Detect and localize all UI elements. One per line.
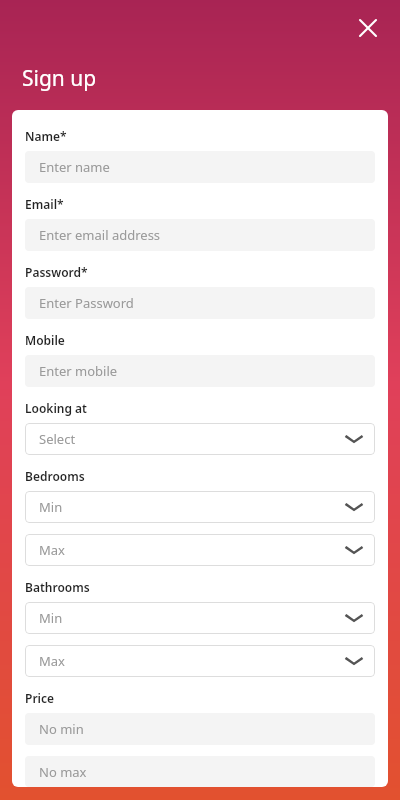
staticText: Enter mobile — [39, 362, 118, 380]
staticText: Min — [39, 498, 345, 516]
staticText: No max — [39, 763, 87, 781]
staticText: Name* — [25, 128, 67, 144]
staticText: Bathrooms — [25, 579, 90, 595]
staticText: Password* — [25, 264, 88, 280]
button[interactable]: Enter name — [25, 151, 375, 183]
button[interactable]: Enter Password — [25, 287, 375, 319]
staticText: Enter name — [39, 158, 110, 176]
staticText: Max — [39, 541, 345, 559]
button[interactable]: No min — [25, 713, 375, 745]
button[interactable]: Max — [25, 645, 375, 677]
staticText: Price — [25, 690, 55, 706]
staticText: Select — [39, 430, 345, 448]
staticText: Email* — [25, 196, 64, 212]
staticText: Enter Password — [39, 294, 134, 312]
staticText: Mobile — [25, 332, 65, 348]
button[interactable]: Min — [25, 491, 375, 523]
button[interactable]: Min — [25, 602, 375, 634]
staticText: Max — [39, 652, 345, 670]
button[interactable]: Max — [25, 534, 375, 566]
button[interactable]: Close — [352, 12, 384, 44]
staticText: Min — [39, 609, 345, 627]
staticText: No min — [39, 720, 84, 738]
staticText: Looking at — [25, 400, 87, 416]
button[interactable]: No max — [25, 756, 375, 787]
staticText: Sign up — [22, 64, 97, 93]
staticText: Bedrooms — [25, 468, 85, 484]
button[interactable]: Enter email address — [25, 219, 375, 251]
staticText: Enter email address — [39, 226, 161, 244]
button[interactable]: Enter mobile — [25, 355, 375, 387]
button[interactable]: Select — [25, 423, 375, 455]
